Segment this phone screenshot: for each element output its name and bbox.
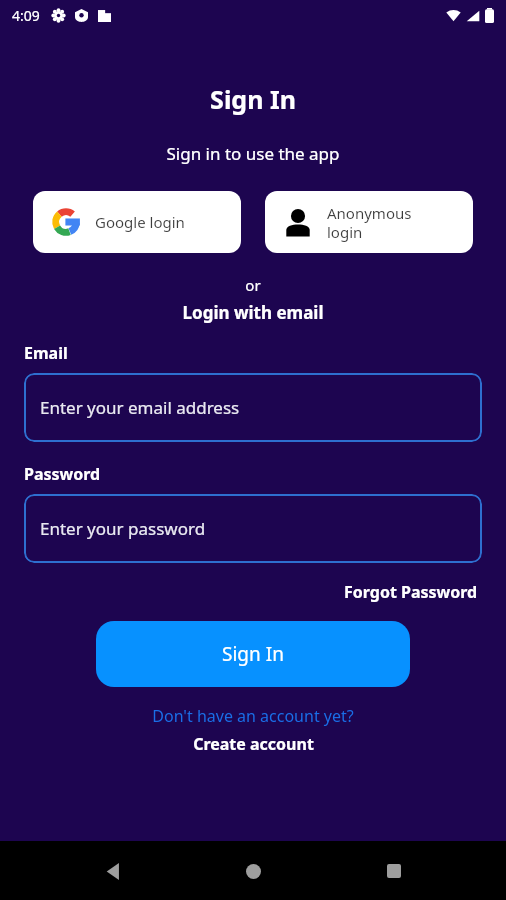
other: Anonymous xyxy=(283,207,313,237)
staticText: Sign In xyxy=(0,82,506,116)
staticText: Create account xyxy=(193,733,314,755)
button[interactable]: Google xyxy=(33,191,241,253)
staticText: Sign in to use the app xyxy=(0,142,506,165)
button[interactable]: Home xyxy=(225,843,281,899)
staticText: Google login xyxy=(95,212,185,232)
button[interactable]: Enter your email address xyxy=(24,373,482,442)
button[interactable]: Anonymous xyxy=(265,191,473,253)
button[interactable]: Enter your password xyxy=(24,494,482,563)
button[interactable]: Don't have an account yet? xyxy=(0,705,506,755)
staticText: Don't have an account yet? xyxy=(152,705,354,727)
staticText: or xyxy=(0,275,506,295)
staticText: Login with email xyxy=(0,301,506,324)
staticText: 4:09 xyxy=(12,6,40,25)
staticText: Sign In xyxy=(222,641,284,667)
staticText: Email xyxy=(24,342,68,364)
button[interactable]: Back xyxy=(85,843,141,899)
staticText: Enter your email address xyxy=(40,396,240,419)
staticText: Anonymous login xyxy=(327,203,412,242)
other: Google xyxy=(51,207,81,237)
button[interactable]: Sign In xyxy=(96,621,410,687)
button[interactable]: Recent apps xyxy=(366,843,422,899)
button[interactable]: Forgot Password xyxy=(340,577,482,607)
staticText: Enter your password xyxy=(40,517,206,540)
staticText: Password xyxy=(24,463,101,485)
